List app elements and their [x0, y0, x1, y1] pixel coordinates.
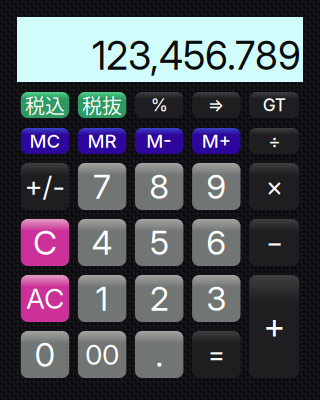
button[interactable]: C [21, 219, 69, 266]
staticText: % [151, 94, 168, 115]
button[interactable]: 税抜 [78, 92, 126, 118]
button[interactable]: % [135, 92, 183, 118]
staticText: 2 [150, 278, 169, 319]
button[interactable]: GT [249, 92, 299, 118]
staticText: 7 [93, 166, 111, 207]
staticText: 4 [92, 222, 113, 263]
staticText: 税込 [25, 90, 65, 119]
staticText: 8 [149, 166, 169, 207]
button[interactable]: ÷ [249, 128, 299, 154]
button[interactable]: AC [21, 275, 69, 322]
staticText: + [263, 305, 285, 347]
button[interactable]: 5 [135, 219, 183, 266]
button[interactable]: = [192, 331, 240, 378]
button[interactable]: 3 [192, 275, 240, 322]
button[interactable]: 6 [192, 219, 240, 266]
staticText: − [266, 226, 283, 259]
staticText: M+ [202, 130, 231, 152]
staticText: 9 [206, 166, 226, 207]
staticText: M- [146, 130, 172, 152]
staticText: 税抜 [82, 90, 122, 119]
staticText: × [266, 170, 283, 203]
staticText: ÷ [268, 130, 280, 152]
staticText: +/- [24, 170, 65, 203]
staticText: . [155, 334, 163, 375]
button[interactable]: 税込 [21, 92, 69, 118]
staticText: = [208, 338, 225, 371]
button[interactable]: MC [21, 128, 69, 154]
staticText: AC [26, 282, 64, 315]
staticText: 0 [34, 334, 55, 375]
staticText: 00 [85, 338, 119, 371]
button[interactable]: +/- [21, 163, 69, 210]
staticText: 3 [206, 278, 226, 319]
button[interactable]: 2 [135, 275, 183, 322]
staticText: 1 [96, 278, 109, 319]
button[interactable]: 4 [78, 219, 126, 266]
staticText: MC [29, 130, 60, 152]
staticText: 5 [150, 222, 169, 263]
button[interactable]: − [249, 219, 299, 266]
button[interactable]: 00 [78, 331, 126, 378]
staticText: 6 [206, 222, 226, 263]
button[interactable]: 9 [192, 163, 240, 210]
button[interactable]: 7 [78, 163, 126, 210]
staticText: C [33, 222, 57, 263]
button[interactable]: × [249, 163, 299, 210]
button[interactable]: M+ [192, 128, 240, 154]
staticText: ⇒ [208, 94, 225, 115]
staticText: GT [263, 94, 286, 115]
staticText: 123,456.789 [92, 32, 301, 79]
button[interactable]: M- [135, 128, 183, 154]
button[interactable]: 8 [135, 163, 183, 210]
button[interactable]: 1 [78, 275, 126, 322]
button[interactable]: + [249, 275, 299, 378]
staticText: MR [88, 130, 117, 152]
button[interactable]: ⇒ [192, 92, 240, 118]
button[interactable]: 0 [21, 331, 69, 378]
button[interactable]: . [135, 331, 183, 378]
button[interactable]: MR [78, 128, 126, 154]
